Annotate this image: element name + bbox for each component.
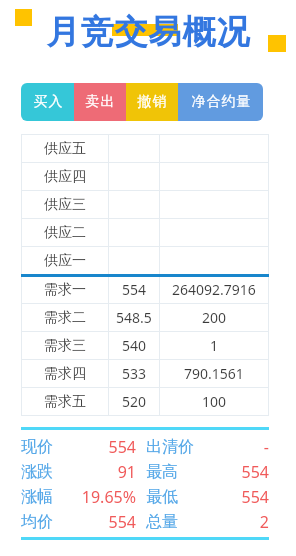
staticText: 554 xyxy=(108,511,136,533)
staticText: 264092.7916 xyxy=(172,280,256,299)
staticText: 需求一 xyxy=(44,281,86,299)
staticText: 200 xyxy=(202,308,227,327)
staticText: 100 xyxy=(202,392,227,411)
staticText: 撤销 xyxy=(137,93,167,111)
button[interactable]: 卖出 xyxy=(74,83,126,121)
staticText: - xyxy=(263,436,269,458)
staticText: 最高 xyxy=(146,462,178,482)
staticText: 涨幅 xyxy=(21,487,53,507)
button[interactable]: 撤销 xyxy=(126,83,178,121)
staticText: 出清价 xyxy=(146,437,194,457)
staticText: 554 xyxy=(241,461,269,483)
staticText: 790.1561 xyxy=(184,364,244,383)
staticText: 540 xyxy=(122,336,147,355)
staticText: 供应二 xyxy=(44,224,86,242)
staticText: 均价 xyxy=(21,512,53,532)
staticText: 现价 xyxy=(21,437,53,457)
staticText: 需求四 xyxy=(44,365,86,383)
staticText: 91 xyxy=(117,461,136,483)
staticText: 548.5 xyxy=(116,308,152,327)
staticText: 需求二 xyxy=(44,309,86,327)
staticText: 需求五 xyxy=(44,393,86,411)
staticText: 需求三 xyxy=(44,337,86,355)
button[interactable]: 净合约量 xyxy=(178,83,263,121)
staticText: 1 xyxy=(210,336,219,355)
button[interactable]: 买入 xyxy=(21,83,74,121)
staticText: 总量 xyxy=(146,512,178,532)
staticText: 533 xyxy=(122,364,147,383)
staticText: 供应三 xyxy=(44,196,86,214)
staticText: 净合约量 xyxy=(191,93,251,111)
staticText: 最低 xyxy=(146,487,178,507)
staticText: 月竞交易概况 xyxy=(46,11,250,53)
staticText: 520 xyxy=(122,392,147,411)
staticText: 买入 xyxy=(33,93,63,111)
staticText: 供应一 xyxy=(44,252,86,270)
staticText: 19.65% xyxy=(81,486,136,508)
staticText: 554 xyxy=(241,486,269,508)
staticText: 卖出 xyxy=(85,93,115,111)
staticText: 涨跌 xyxy=(21,462,53,482)
staticText: 554 xyxy=(122,280,147,299)
staticText: 供应四 xyxy=(44,168,86,186)
staticText: 2 xyxy=(259,511,269,533)
staticText: 供应五 xyxy=(44,140,86,158)
staticText: 554 xyxy=(108,436,136,458)
